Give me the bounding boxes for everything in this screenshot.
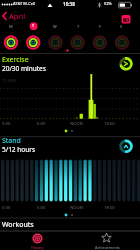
button[interactable]: Workouts <box>0 218 140 231</box>
staticText: Exercise <box>2 55 29 65</box>
staticText: F <box>99 24 102 29</box>
button[interactable] <box>118 12 136 25</box>
staticText: 18:00 <box>104 121 115 127</box>
staticText: Stand <box>2 136 21 146</box>
staticText: 18:00 <box>104 205 115 211</box>
staticText: NOON <box>70 205 83 211</box>
staticText: W <box>53 24 57 29</box>
staticText: 6:00 <box>37 121 46 127</box>
staticText: M <box>9 24 13 29</box>
staticText: NOON <box>70 121 83 127</box>
staticText: Achievements <box>95 245 120 250</box>
staticText: 6:00 <box>37 205 46 211</box>
staticText: History <box>31 245 44 250</box>
staticText: 5/12 hours <box>2 145 36 154</box>
staticText: 52% <box>104 1 112 6</box>
staticText: April <box>9 11 26 21</box>
staticText: T <box>32 23 34 28</box>
button[interactable]: Achievements <box>70 231 140 250</box>
staticText: S <box>120 24 123 29</box>
staticText: T <box>77 24 80 29</box>
staticText: 0:00 <box>2 121 11 127</box>
button[interactable]: History <box>0 231 70 250</box>
staticText: Workouts <box>2 220 34 230</box>
staticText: 10:38 <box>63 1 75 7</box>
staticText: 20/30 minutes <box>2 64 46 73</box>
staticText: 0:00 <box>2 205 11 211</box>
staticText: 15 MIN <box>2 78 16 83</box>
staticText: AT&T M-Cell <box>13 1 36 6</box>
button[interactable]: April <box>0 9 34 23</box>
